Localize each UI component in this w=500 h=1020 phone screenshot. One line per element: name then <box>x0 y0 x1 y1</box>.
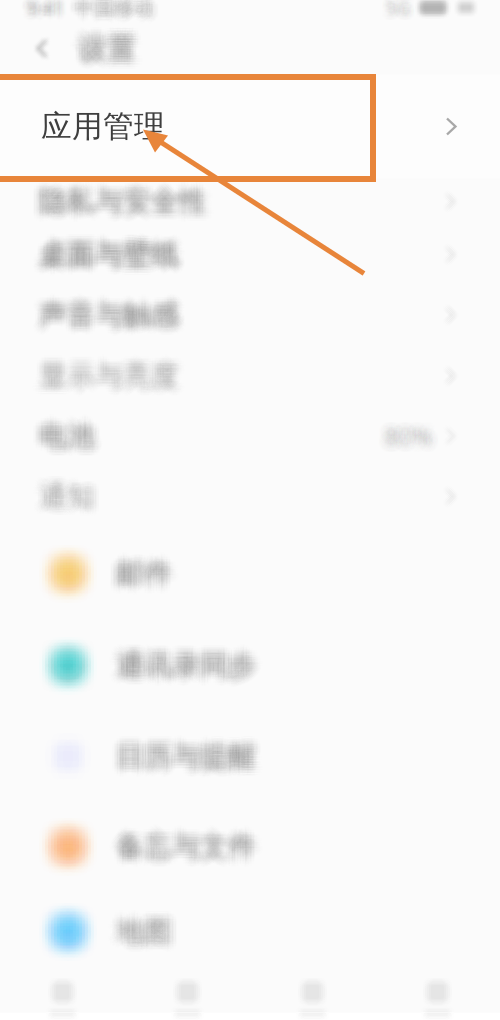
staticText: 电池 <box>36 420 92 455</box>
button[interactable]: Search <box>250 971 375 1020</box>
staticText: 桌面与壁纸 <box>33 228 173 262</box>
staticText: 邮件 <box>118 559 174 594</box>
staticText: 备忘与文件 <box>126 823 266 857</box>
button[interactable]: 应用管理 <box>0 74 500 178</box>
staticText: 80% <box>387 427 436 461</box>
staticText: 隐私与安全性 <box>34 175 202 209</box>
staticText: 80% <box>374 413 423 446</box>
button[interactable]: Apps <box>125 971 250 1020</box>
staticText: 邮件 <box>108 550 164 584</box>
button[interactable]: 地图 <box>0 891 500 971</box>
staticText: 5G <box>391 0 416 20</box>
button[interactable]: Home <box>0 971 125 1020</box>
staticText: 地图 <box>122 916 178 950</box>
staticText: 声音与触感 <box>40 296 180 331</box>
staticText: 电池 <box>31 416 87 450</box>
staticText: 5G <box>387 0 412 17</box>
staticText: 通讯录同步 <box>116 653 256 687</box>
staticText: 声音与触感 <box>33 288 173 323</box>
button[interactable]: 显示与亮度 <box>0 345 500 406</box>
staticText: 隐私与安全性 <box>31 175 199 209</box>
staticText: 备忘与文件 <box>114 829 254 864</box>
staticText: 5G <box>391 0 416 19</box>
button[interactable]: Profile <box>375 971 500 1020</box>
staticText: 备忘与文件 <box>126 824 266 859</box>
staticText: 电池 <box>47 420 103 455</box>
staticText: 声音与触感 <box>42 293 182 328</box>
staticText: 隐私与安全性 <box>48 175 216 209</box>
staticText: 80% <box>389 413 438 446</box>
staticText: 地图 <box>119 919 175 953</box>
staticText: 地图 <box>124 913 180 947</box>
staticText: 80% <box>378 427 427 461</box>
staticText: 隐私与安全性 <box>36 186 204 220</box>
staticText: 80% <box>384 422 433 456</box>
staticText: 地图 <box>108 908 164 942</box>
button[interactable]: 备忘与文件 <box>0 801 500 891</box>
staticText: 隐私与安全性 <box>39 180 207 214</box>
staticText: 显示与亮度 <box>39 356 179 390</box>
staticText: 邮件 <box>116 564 172 599</box>
staticText: 通知 <box>34 481 90 515</box>
staticText: 电池 <box>41 414 97 448</box>
staticText: 电池 <box>29 419 85 453</box>
staticText: 通讯录同步 <box>118 643 258 678</box>
staticText: 9:41 中国移动 <box>18 0 146 13</box>
staticText: 通知 <box>39 471 95 506</box>
staticText: 设置 <box>68 27 126 63</box>
staticText: 隐私与安全性 <box>33 178 201 212</box>
button[interactable]: 日历与提醒 <box>0 711 500 801</box>
staticText: 设置 <box>81 22 139 58</box>
button[interactable]: Back <box>26 30 58 66</box>
staticText: 地图 <box>126 908 182 942</box>
staticText: 电池 <box>33 414 89 448</box>
staticText: 桌面与壁纸 <box>42 233 182 267</box>
staticText: 80% <box>386 414 435 448</box>
staticText: 5G <box>383 3 408 28</box>
staticText: 5G <box>379 0 404 15</box>
staticText: 通知 <box>41 484 97 518</box>
staticText: 备忘与文件 <box>118 829 258 864</box>
staticText: 备忘与文件 <box>116 829 256 864</box>
staticText: 5G <box>382 2 407 26</box>
button[interactable]: 声音与触感 <box>0 284 500 345</box>
staticText: 隐私与安全性 <box>47 177 215 211</box>
staticText: 通知 <box>36 473 92 507</box>
button[interactable]: 电池 <box>0 406 500 465</box>
staticText: 桌面与壁纸 <box>42 231 182 265</box>
staticText: 通知 <box>37 479 93 514</box>
staticText: 隐私与安全性 <box>42 189 210 223</box>
button[interactable]: 通讯录同步 <box>0 619 500 711</box>
staticText: 桌面与壁纸 <box>39 228 179 262</box>
button[interactable]: 桌面与壁纸 <box>0 224 500 284</box>
staticText: 显示与亮度 <box>41 368 181 403</box>
staticText: 日历与提醒 <box>119 730 259 764</box>
staticText: 通讯录同步 <box>119 650 259 684</box>
staticText: 备忘与文件 <box>116 824 256 859</box>
staticText: 邮件 <box>113 555 169 589</box>
staticText: 电池 <box>41 428 97 463</box>
staticText: 通讯录同步 <box>114 658 254 692</box>
staticText: 邮件 <box>106 559 162 594</box>
staticText: 桌面与壁纸 <box>39 236 179 270</box>
staticText: 地图 <box>124 914 180 949</box>
staticText: 日历与提醒 <box>118 746 258 780</box>
staticText: 隐私与安全性 <box>45 189 213 223</box>
staticText: 通讯录同步 <box>118 642 258 676</box>
staticText: 邮件 <box>116 559 172 594</box>
staticText: 显示与亮度 <box>42 354 182 388</box>
button[interactable]: 通知 <box>0 465 500 527</box>
staticText: 显示与亮度 <box>47 354 187 388</box>
staticText: 地图 <box>114 911 170 945</box>
staticText: 通知 <box>31 482 87 517</box>
staticText: 桌面与壁纸 <box>31 243 171 278</box>
button[interactable]: 隐私与安全性 <box>0 178 500 224</box>
button[interactable]: 邮件 <box>0 527 500 619</box>
staticText: 备忘与文件 <box>124 832 264 867</box>
staticText: 通知 <box>33 479 89 514</box>
staticText: 邮件 <box>118 553 174 587</box>
staticText: 地图 <box>119 913 175 947</box>
staticText: 备忘与文件 <box>113 837 253 872</box>
staticText: 隐私与安全性 <box>48 178 216 212</box>
staticText: 通知 <box>47 487 103 522</box>
